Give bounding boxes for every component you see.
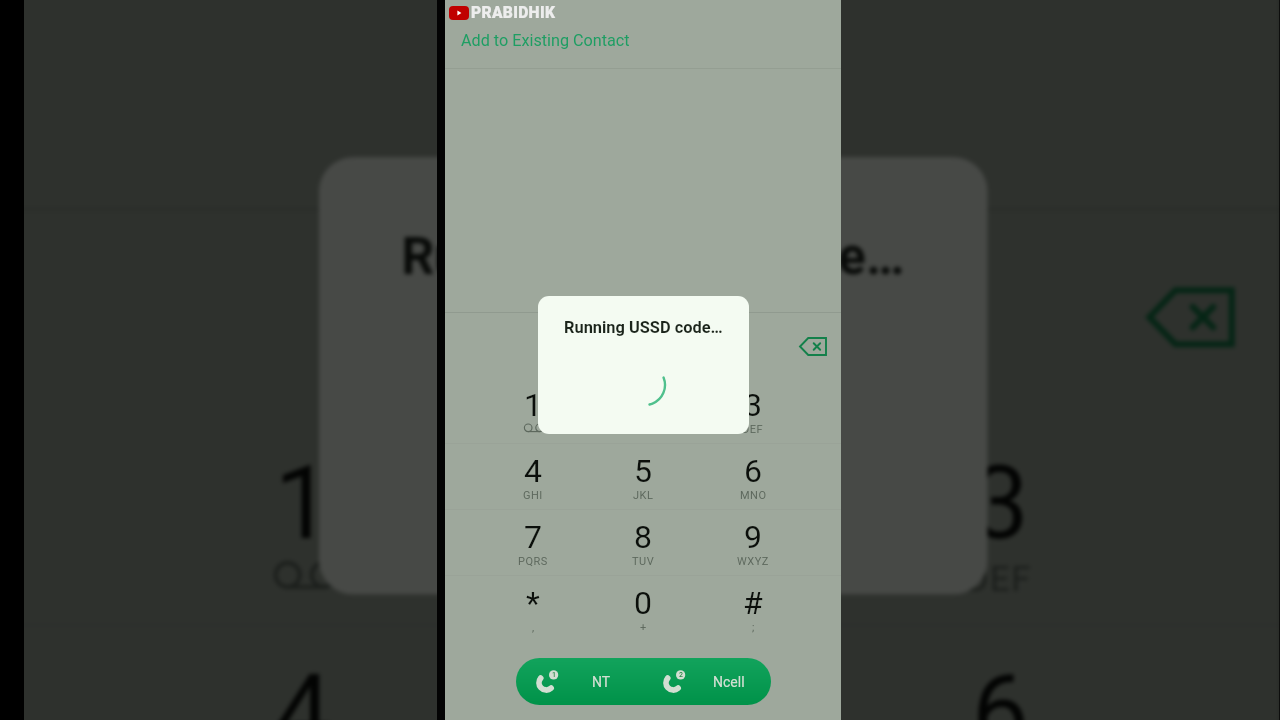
button[interactable]: Add to Existing Contact xyxy=(461,31,630,50)
staticText: * xyxy=(526,584,540,622)
staticText: ABC xyxy=(617,560,690,601)
staticText: NT xyxy=(592,674,611,690)
staticText: 1 xyxy=(524,386,542,424)
staticText: PRABIDHIK xyxy=(471,4,556,22)
button[interactable]: 8 xyxy=(588,510,698,576)
staticText: # xyxy=(743,584,763,622)
staticText: 7 xyxy=(524,518,542,556)
staticText: Running USSD code… xyxy=(401,227,905,287)
button[interactable]: Backspace xyxy=(795,328,831,364)
button[interactable]: 7 xyxy=(478,510,588,576)
button[interactable]: 2 xyxy=(643,658,771,705)
staticText: 4 xyxy=(524,452,542,490)
staticText: 6 xyxy=(744,452,762,490)
staticText: DEF xyxy=(965,560,1035,601)
staticText: Ncell xyxy=(713,674,745,690)
staticText: DEF xyxy=(742,423,764,436)
staticText: 1 xyxy=(552,671,556,678)
staticText: Running USSD code… xyxy=(564,318,723,337)
button[interactable]: 1 xyxy=(478,378,588,444)
staticText: Add to Existing Contact xyxy=(461,31,630,50)
staticText: 2 xyxy=(634,386,652,424)
staticText: 4 xyxy=(274,652,331,720)
button[interactable]: 0 xyxy=(588,576,698,642)
staticText: 6 xyxy=(972,652,1029,720)
staticText: 1 xyxy=(274,442,331,563)
staticText: PQRS xyxy=(518,555,548,568)
staticText: 9 xyxy=(744,518,762,556)
staticText: 8 xyxy=(634,518,652,556)
staticText: JKL xyxy=(633,489,654,502)
staticText: ABC xyxy=(632,423,655,436)
staticText: 2 xyxy=(623,442,680,563)
button[interactable]: 2 xyxy=(588,378,698,444)
button[interactable]: 4 xyxy=(478,444,588,510)
staticText: + xyxy=(640,621,647,634)
staticText: ; xyxy=(752,621,755,634)
button[interactable]: 1 xyxy=(516,658,643,705)
staticText: 3 xyxy=(972,442,1029,563)
staticText: 5 xyxy=(623,652,680,720)
button[interactable]: 3 xyxy=(698,378,808,444)
staticText: 2 xyxy=(679,671,683,678)
button[interactable]: 5 xyxy=(588,444,698,510)
staticText: 5 xyxy=(634,452,652,490)
staticText: 3 xyxy=(744,386,762,424)
staticText: WXYZ xyxy=(737,555,769,568)
staticText: 0 xyxy=(634,584,652,622)
button[interactable]: 9 xyxy=(698,510,808,576)
staticText: GHI xyxy=(523,489,543,502)
button[interactable]: 6 xyxy=(698,444,808,510)
staticText: TUV xyxy=(632,555,655,568)
button[interactable]: # xyxy=(698,576,808,642)
button[interactable]: * xyxy=(478,576,588,642)
staticText: MNO xyxy=(740,489,767,502)
staticText: , xyxy=(532,621,535,634)
